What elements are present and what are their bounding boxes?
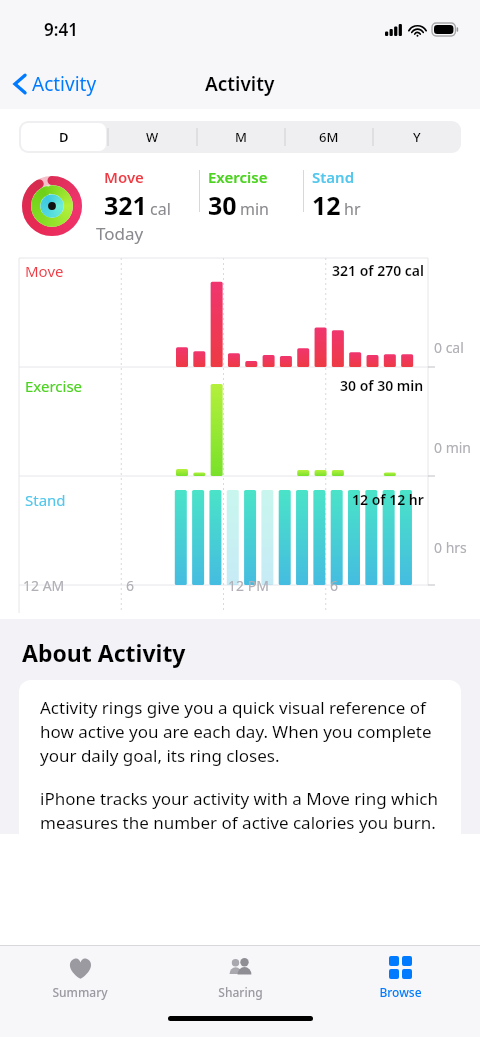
staticText: Stand — [25, 490, 66, 510]
staticText: 12 — [312, 188, 341, 222]
button[interactable]: Activity — [8, 65, 103, 103]
staticText: M — [235, 128, 247, 146]
staticText: Y — [413, 128, 421, 146]
staticText: D — [59, 128, 69, 146]
staticText: Move — [104, 167, 144, 187]
staticText: cal — [150, 198, 171, 220]
button[interactable]: Sharing — [160, 946, 320, 1008]
button[interactable]: D — [19, 121, 108, 153]
staticText: 30 — [208, 188, 237, 222]
staticText: 6M — [319, 128, 339, 146]
staticText: min — [240, 198, 269, 220]
staticText: About Activity — [22, 637, 186, 668]
staticText: 321 — [104, 188, 147, 222]
staticText: Exercise — [208, 167, 268, 187]
staticText: 9:41 — [44, 18, 78, 41]
button[interactable]: M — [197, 121, 285, 153]
staticText: 12 AM — [23, 576, 65, 595]
staticText: 6 — [330, 576, 339, 595]
button[interactable]: 6M — [285, 121, 373, 153]
button[interactable]: Y — [373, 121, 461, 153]
button[interactable]: Summary — [0, 946, 160, 1008]
staticText: 0 cal — [434, 338, 464, 357]
staticText: W — [146, 128, 159, 146]
button[interactable]: Browse — [320, 946, 480, 1008]
staticText: 12 of 12 hr — [352, 490, 424, 509]
staticText: 30 of 30 min — [340, 376, 424, 395]
button[interactable]: W — [108, 121, 197, 153]
staticText: Summary — [52, 984, 108, 1000]
staticText: 6 — [126, 576, 135, 595]
staticText: 0 min — [434, 438, 472, 457]
staticText: hr — [344, 198, 361, 220]
staticText: Activity — [32, 71, 97, 97]
staticText: 321 of 270 cal — [332, 261, 424, 280]
staticText: Activity rings give you a quick visual r… — [40, 696, 445, 767]
staticText: Activity — [205, 71, 275, 97]
staticText: 0 hrs — [434, 538, 467, 557]
staticText: Move — [25, 261, 64, 281]
staticText: Browse — [379, 984, 422, 1000]
staticText: Exercise — [25, 376, 83, 396]
staticText: 12 PM — [228, 576, 269, 595]
staticText: iPhone tracks your activity with a Move … — [40, 787, 445, 834]
staticText: Today — [96, 222, 144, 245]
staticText: Sharing — [218, 984, 263, 1000]
staticText: Stand — [312, 167, 355, 187]
